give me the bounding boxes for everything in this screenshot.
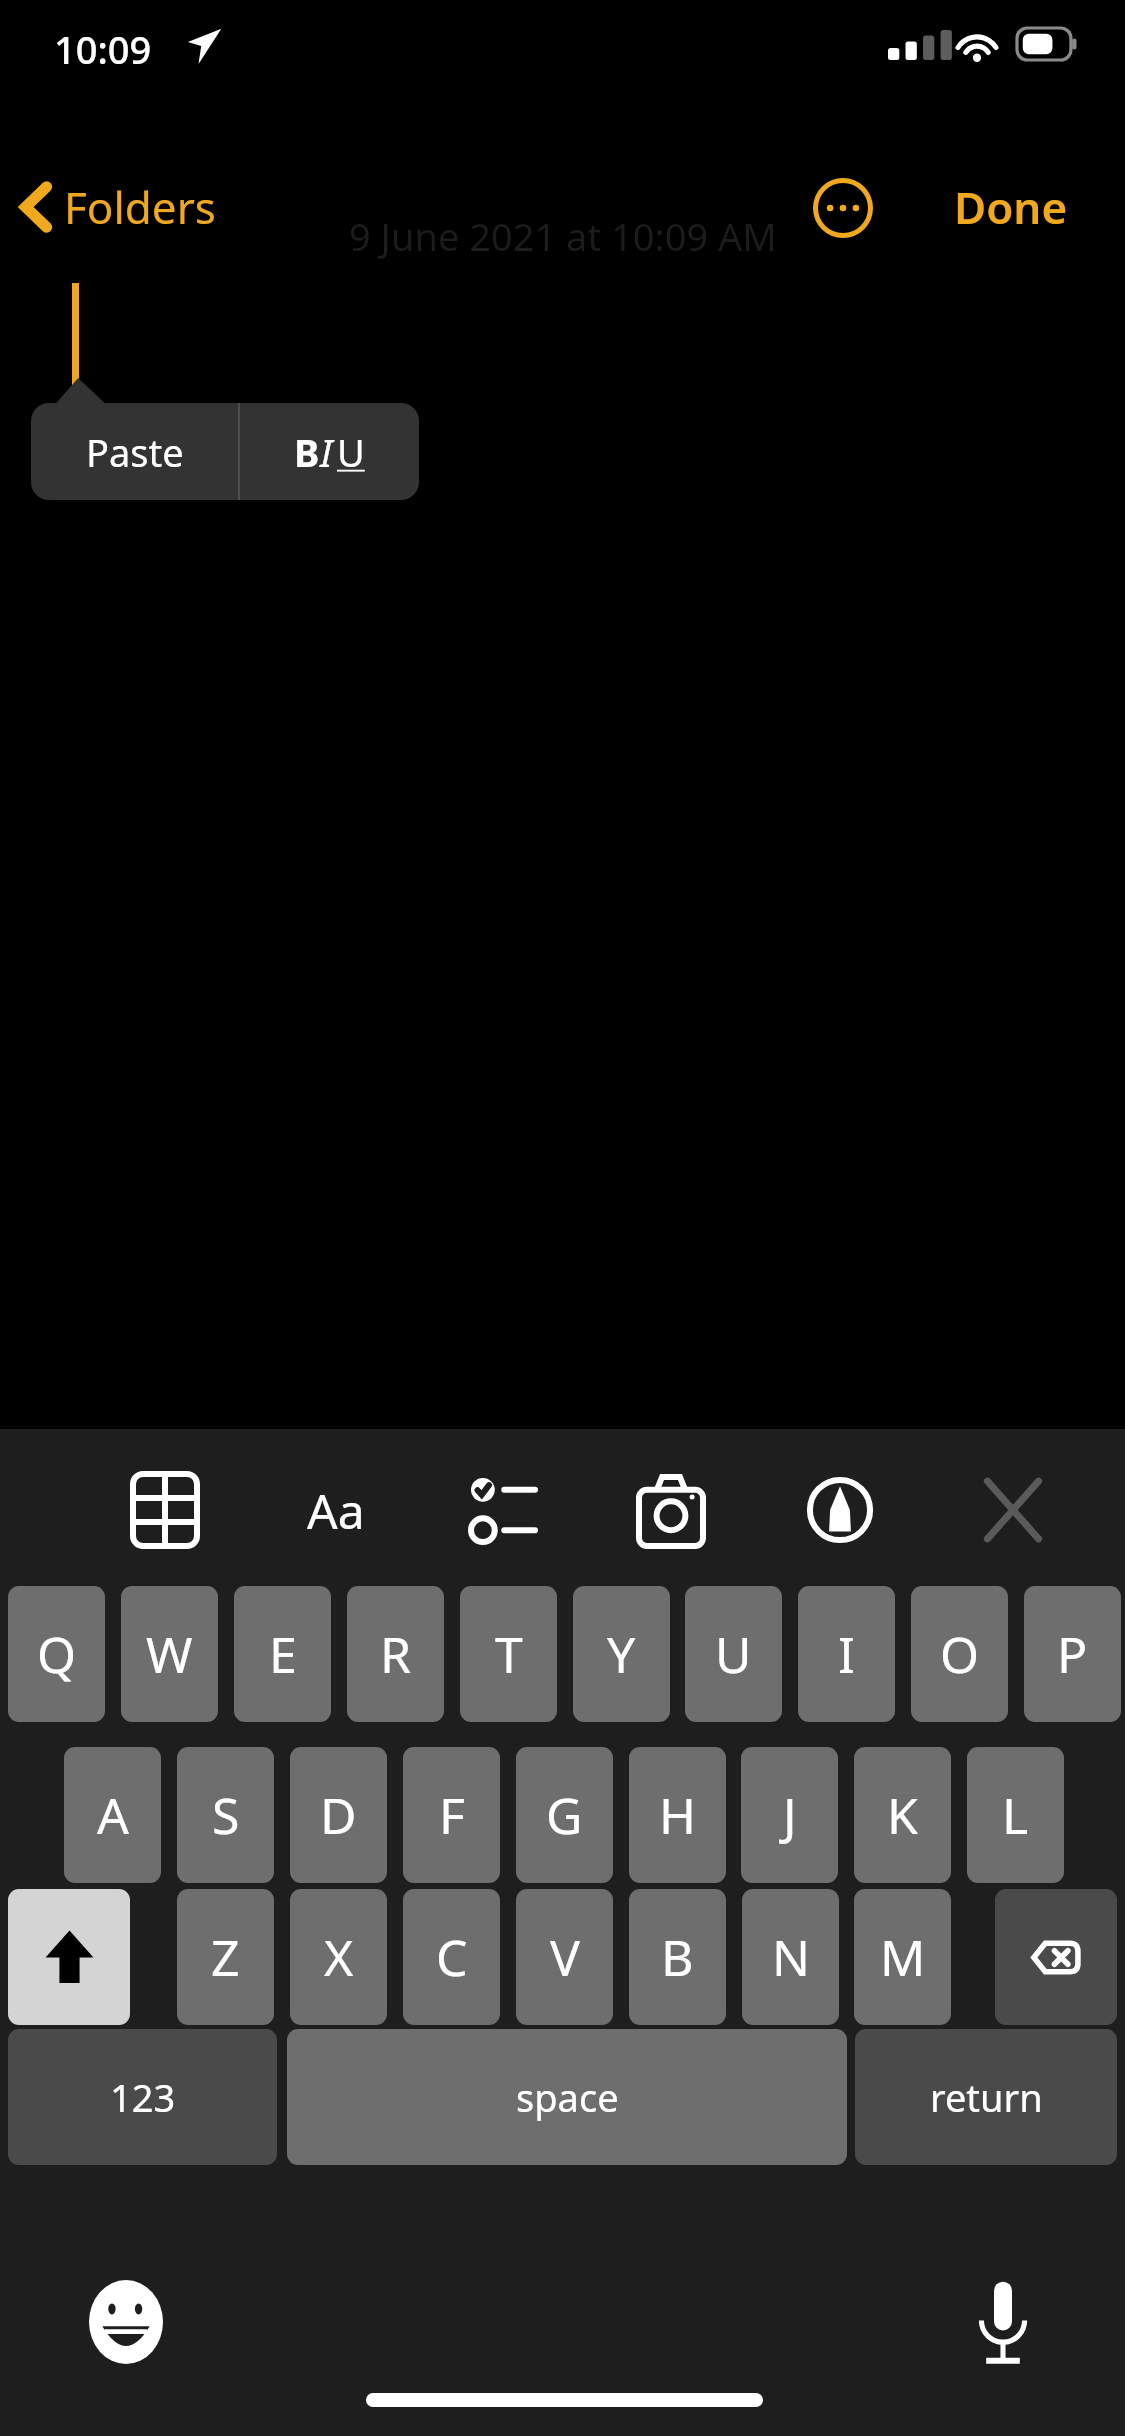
button[interactable]: O (911, 1586, 1008, 1722)
staticText: 123 (110, 2071, 176, 2123)
staticText: L (1002, 1781, 1029, 1849)
staticText: U (337, 426, 365, 478)
button[interactable]: P (1024, 1586, 1121, 1722)
staticText: Y (607, 1620, 636, 1688)
button[interactable]: S (177, 1747, 274, 1883)
staticText: Q (37, 1620, 77, 1688)
button[interactable]: Folders (14, 166, 224, 248)
staticText: B (661, 1923, 694, 1991)
staticText: return (930, 2071, 1043, 2123)
button[interactable]: H (629, 1747, 726, 1883)
button[interactable]: 123 (8, 2029, 277, 2165)
button[interactable]: return (855, 2029, 1117, 2165)
button[interactable]: Shift (8, 1889, 130, 2025)
button[interactable]: I (798, 1586, 895, 1722)
staticText: N (772, 1923, 810, 1991)
staticText: Z (211, 1923, 240, 1991)
staticText: Aa (307, 1478, 365, 1543)
button[interactable]: N (742, 1889, 839, 2025)
button[interactable]: L (967, 1747, 1064, 1883)
staticText: Paste (86, 426, 184, 478)
button[interactable]: Emoji (78, 2274, 174, 2370)
button[interactable]: W (121, 1586, 218, 1722)
staticText: E (269, 1620, 297, 1688)
button[interactable]: G (516, 1747, 613, 1883)
button[interactable]: Close keyboard (965, 1460, 1061, 1560)
staticText: X (324, 1923, 354, 1991)
staticText: 10:09 (54, 23, 152, 71)
button[interactable]: B (240, 403, 419, 500)
staticText: R (380, 1620, 412, 1688)
button[interactable]: V (516, 1889, 613, 2025)
staticText: P (1057, 1620, 1088, 1688)
button[interactable]: X (290, 1889, 387, 2025)
staticText: V (550, 1923, 580, 1991)
staticText: O (940, 1620, 980, 1688)
staticText: M (880, 1923, 926, 1991)
staticText: D (320, 1781, 357, 1849)
staticText: T (495, 1620, 523, 1688)
button[interactable]: Y (573, 1586, 670, 1722)
button[interactable]: C (403, 1889, 500, 2025)
staticText: I (838, 1620, 855, 1688)
button[interactable]: F (403, 1747, 500, 1883)
staticText: J (783, 1781, 797, 1849)
button[interactable]: Z (177, 1889, 274, 2025)
button[interactable]: M (854, 1889, 951, 2025)
button[interactable]: Markup (792, 1460, 888, 1560)
button[interactable]: Camera (623, 1460, 719, 1560)
staticText: G (546, 1781, 583, 1849)
button[interactable]: T (460, 1586, 557, 1722)
staticText: H (659, 1781, 697, 1849)
staticText: K (887, 1781, 918, 1849)
staticText: I (320, 426, 333, 478)
button[interactable]: Dictation (955, 2274, 1051, 2370)
button[interactable]: U (685, 1586, 782, 1722)
button[interactable]: J (741, 1747, 838, 1883)
staticText: A (97, 1781, 129, 1849)
button[interactable]: More options (805, 170, 881, 246)
button[interactable]: A (64, 1747, 161, 1883)
button[interactable]: space (287, 2029, 847, 2165)
staticText: S (212, 1781, 240, 1849)
staticText: 9 June 2021 at 10:09 AM (349, 210, 777, 262)
staticText: F (439, 1781, 465, 1849)
button[interactable]: Done (942, 166, 1080, 248)
button[interactable]: Checklist (455, 1460, 551, 1560)
staticText: Done (954, 177, 1068, 237)
button[interactable]: Q (8, 1586, 105, 1722)
button[interactable]: E (234, 1586, 331, 1722)
staticText: B (294, 426, 320, 478)
button[interactable]: B (629, 1889, 726, 2025)
staticText: U (715, 1620, 752, 1688)
staticText: Folders (64, 177, 216, 237)
button[interactable]: K (854, 1747, 951, 1883)
button[interactable]: Table (117, 1460, 213, 1560)
button[interactable]: D (290, 1747, 387, 1883)
button[interactable]: Backspace (995, 1889, 1117, 2025)
button[interactable]: Text format (291, 1465, 381, 1555)
button[interactable]: Paste (31, 403, 238, 500)
staticText: W (146, 1620, 193, 1688)
button[interactable]: R (347, 1586, 444, 1722)
staticText: space (516, 2071, 619, 2123)
staticText: C (436, 1923, 468, 1991)
